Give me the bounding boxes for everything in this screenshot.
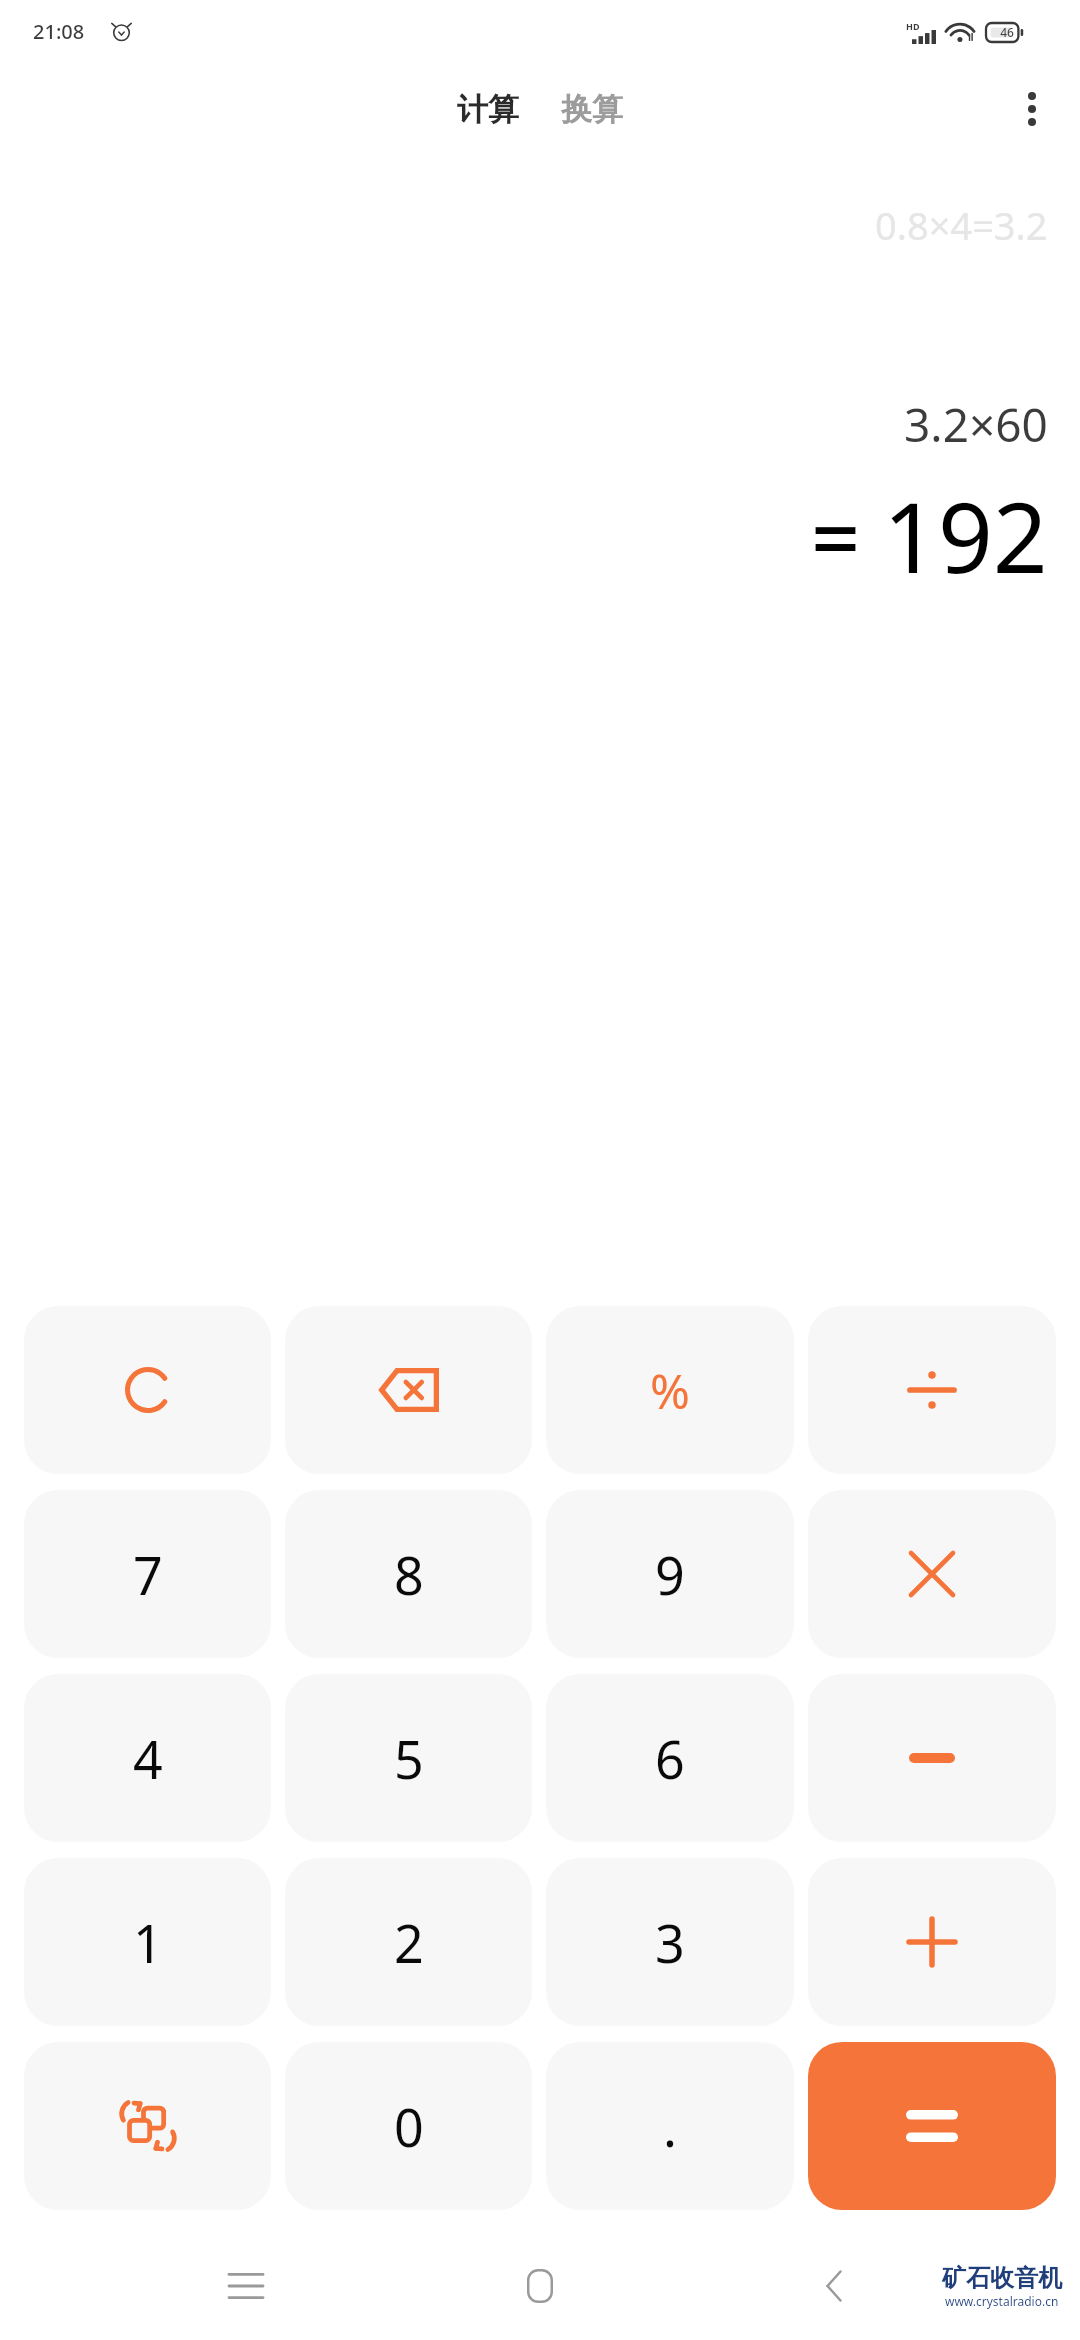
button[interactable]: 6 — [546, 1674, 794, 1842]
staticText: 9 — [655, 1539, 685, 1610]
staticText: 0 — [394, 2091, 424, 2162]
staticText: . — [663, 2091, 677, 2162]
staticText: 5 — [394, 1723, 424, 1794]
button[interactable]: 7 — [24, 1490, 271, 1658]
button[interactable]: 计算 — [447, 84, 529, 135]
staticText: = — [811, 477, 861, 594]
staticText: 8 — [394, 1539, 424, 1610]
staticText: 4 — [133, 1723, 163, 1794]
button[interactable]: Equals — [808, 2042, 1056, 2210]
button[interactable]: Clear — [24, 1306, 271, 1474]
button[interactable]: Divide — [808, 1306, 1056, 1474]
button[interactable]: 换算 — [551, 84, 633, 135]
button[interactable]: 5 — [285, 1674, 532, 1842]
button[interactable]: Back — [786, 2238, 882, 2334]
button[interactable]: 0 — [285, 2042, 532, 2210]
button[interactable]: Convert units — [24, 2042, 271, 2210]
staticText: 46 — [1000, 24, 1014, 40]
button[interactable]: Multiply — [808, 1490, 1056, 1658]
staticText: 21:08 — [33, 18, 85, 45]
button[interactable]: % — [546, 1306, 794, 1474]
button[interactable]: 2 — [285, 1858, 532, 2026]
button[interactable]: Add — [808, 1858, 1056, 2026]
staticText: % — [650, 1358, 690, 1423]
staticText: HD — [906, 20, 920, 32]
button[interactable]: Recent apps — [198, 2238, 294, 2334]
staticText: 1 — [133, 1907, 163, 1978]
staticText: 换算 — [561, 90, 623, 129]
button[interactable]: 4 — [24, 1674, 271, 1842]
staticText: www.crystalradio.cn — [945, 2293, 1059, 2309]
button[interactable]: 1 — [24, 1858, 271, 2026]
button[interactable]: 3 — [546, 1858, 794, 2026]
staticText: 计算 — [457, 90, 519, 129]
button[interactable]: Delete — [285, 1306, 532, 1474]
staticText: 矿石收音机 — [942, 2263, 1062, 2293]
staticText: 0.8×4=3.2 — [875, 199, 1048, 251]
button[interactable]: Subtract — [808, 1674, 1056, 1842]
staticText: 3 — [655, 1907, 685, 1978]
button[interactable]: 8 — [285, 1490, 532, 1658]
staticText: 3.2×60 — [904, 393, 1048, 456]
button[interactable]: More options — [1000, 77, 1064, 141]
staticText: 6 — [655, 1723, 685, 1794]
staticText: 7 — [133, 1539, 163, 1610]
button[interactable]: 9 — [546, 1490, 794, 1658]
button[interactable]: . — [546, 2042, 794, 2210]
button[interactable]: Home — [492, 2238, 588, 2334]
staticText: 192 — [883, 470, 1048, 601]
staticText: 2 — [394, 1907, 424, 1978]
